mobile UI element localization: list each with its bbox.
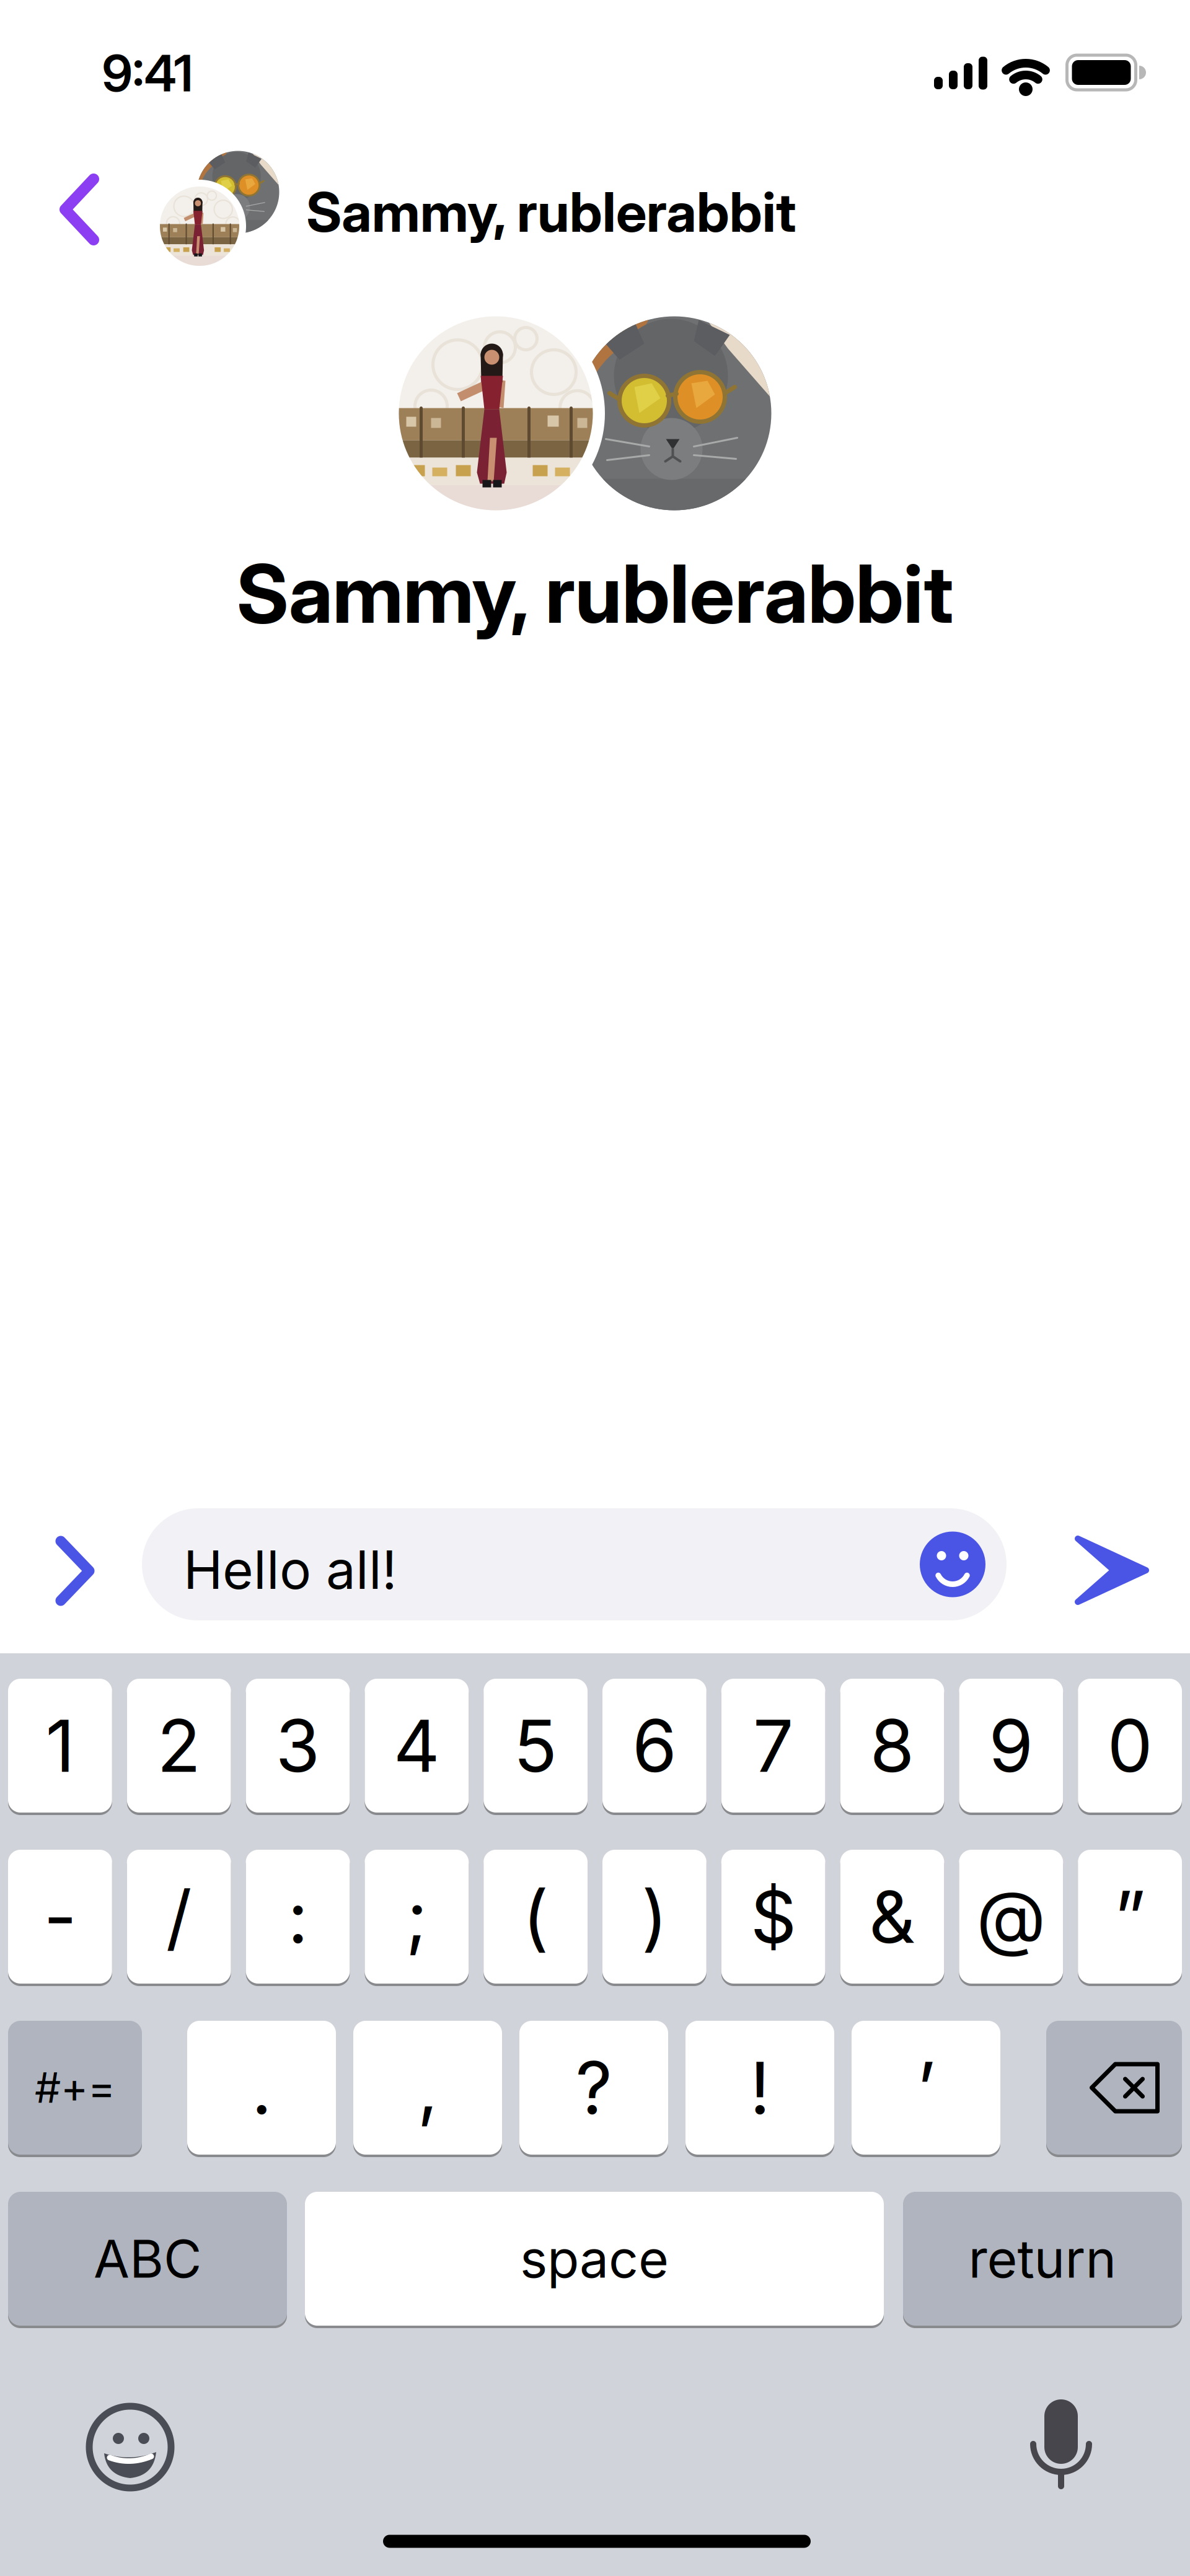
staticText: 9:41: [102, 43, 193, 104]
staticText: 3: [275, 1702, 320, 1789]
staticText: !: [750, 2044, 770, 2131]
button[interactable]: /: [127, 1850, 231, 1984]
button[interactable]: ?: [519, 2021, 668, 2155]
staticText: 6: [632, 1702, 677, 1789]
staticText: ): [641, 1873, 667, 1960]
button[interactable]: 9: [959, 1679, 1063, 1813]
staticText: /: [166, 1873, 192, 1960]
button[interactable]: 2: [127, 1679, 231, 1813]
button[interactable]: Emoji keyboard: [86, 2402, 175, 2492]
staticText: -: [44, 1873, 76, 1960]
button[interactable]: 1: [8, 1679, 112, 1813]
staticText: 9: [989, 1702, 1033, 1789]
staticText: ’: [917, 2044, 935, 2131]
button[interactable]: $: [721, 1850, 825, 1984]
staticText: #+=: [35, 2063, 115, 2113]
button[interactable]: ”: [1078, 1850, 1182, 1984]
staticText: return: [968, 2227, 1117, 2290]
staticText: ?: [575, 2044, 612, 2131]
button[interactable]: 8: [840, 1679, 944, 1813]
staticText: &: [869, 1873, 915, 1960]
staticText: 5: [514, 1702, 558, 1789]
staticText: .: [251, 2044, 272, 2131]
staticText: 4: [393, 1702, 440, 1789]
staticText: ”: [1114, 1873, 1146, 1960]
button[interactable]: 6: [602, 1679, 706, 1813]
button[interactable]: ;: [365, 1850, 469, 1984]
button[interactable]: ,: [353, 2021, 502, 2155]
staticText: 2: [157, 1702, 201, 1789]
staticText: :: [288, 1873, 308, 1960]
staticText: (: [523, 1873, 549, 1960]
button[interactable]: ’: [852, 2021, 1000, 2155]
button[interactable]: More: [57, 1540, 93, 1602]
button[interactable]: Send: [1078, 1537, 1146, 1603]
staticText: Sammy, rublerabbit: [306, 179, 796, 245]
staticText: ABC: [94, 2227, 201, 2290]
staticText: space: [520, 2227, 669, 2290]
staticText: $: [750, 1873, 796, 1960]
button[interactable]: 3: [246, 1679, 350, 1813]
button[interactable]: Emoji: [920, 1532, 985, 1597]
button[interactable]: Sammy, rublerabbit: [0, 0, 1190, 2576]
staticText: Hello all!: [183, 1538, 397, 1602]
button[interactable]: @: [959, 1850, 1063, 1984]
staticText: 0: [1107, 1702, 1153, 1789]
button[interactable]: 7: [721, 1679, 825, 1813]
button[interactable]: 5: [484, 1679, 588, 1813]
button[interactable]: ): [602, 1850, 706, 1984]
staticText: 7: [753, 1702, 794, 1789]
staticText: 1: [45, 1702, 75, 1789]
staticText: ;: [406, 1873, 428, 1960]
button[interactable]: Delete: [1046, 2021, 1182, 2155]
button[interactable]: .: [187, 2021, 336, 2155]
button[interactable]: 4: [365, 1679, 469, 1813]
staticText: Sammy, rublerabbit: [236, 545, 954, 642]
staticText: 8: [870, 1702, 915, 1789]
button[interactable]: !: [685, 2021, 834, 2155]
button[interactable]: -: [8, 1850, 112, 1984]
button[interactable]: Dictation: [1016, 2399, 1106, 2489]
button[interactable]: return: [903, 2192, 1182, 2326]
button[interactable]: :: [246, 1850, 350, 1984]
button[interactable]: space: [305, 2192, 884, 2326]
button[interactable]: (: [484, 1850, 588, 1984]
button[interactable]: Back: [60, 177, 99, 242]
staticText: @: [976, 1873, 1046, 1960]
staticText: ,: [417, 2044, 438, 2131]
button[interactable]: 0: [1078, 1679, 1182, 1813]
button[interactable]: ABC: [8, 2192, 287, 2326]
button[interactable]: #+=: [8, 2021, 142, 2155]
button[interactable]: &: [840, 1850, 944, 1984]
